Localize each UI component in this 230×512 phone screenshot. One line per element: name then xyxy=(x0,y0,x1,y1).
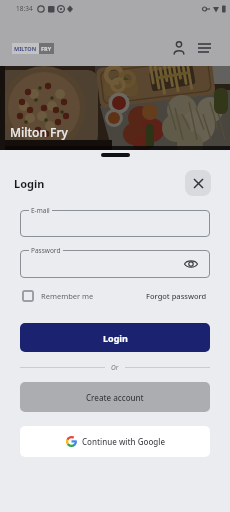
button[interactable] xyxy=(196,40,212,56)
button[interactable] xyxy=(185,170,211,196)
staticText: Create account xyxy=(86,392,144,403)
button[interactable] xyxy=(20,210,210,237)
button[interactable]: Login xyxy=(20,323,210,352)
staticText: Remember me xyxy=(41,291,94,301)
button[interactable]: Forgot password xyxy=(146,291,207,301)
staticText: 18:34 xyxy=(16,4,33,13)
button[interactable] xyxy=(20,250,210,278)
staticText: FRY xyxy=(41,45,52,52)
button[interactable]: Create account xyxy=(20,382,210,412)
button[interactable]: MILTON xyxy=(12,43,54,54)
staticText: Milton Fry xyxy=(10,124,68,140)
button[interactable] xyxy=(22,290,34,302)
staticText: E-mail xyxy=(31,206,50,215)
staticText: Or xyxy=(111,363,119,372)
button[interactable] xyxy=(171,40,187,56)
staticText: Password xyxy=(31,246,61,255)
button[interactable]: Continue with Google xyxy=(20,426,210,457)
staticText: MILTON xyxy=(14,45,37,52)
staticText: Login xyxy=(14,176,45,191)
staticText: Continue with Google xyxy=(82,436,165,447)
staticText: Login xyxy=(103,332,128,344)
